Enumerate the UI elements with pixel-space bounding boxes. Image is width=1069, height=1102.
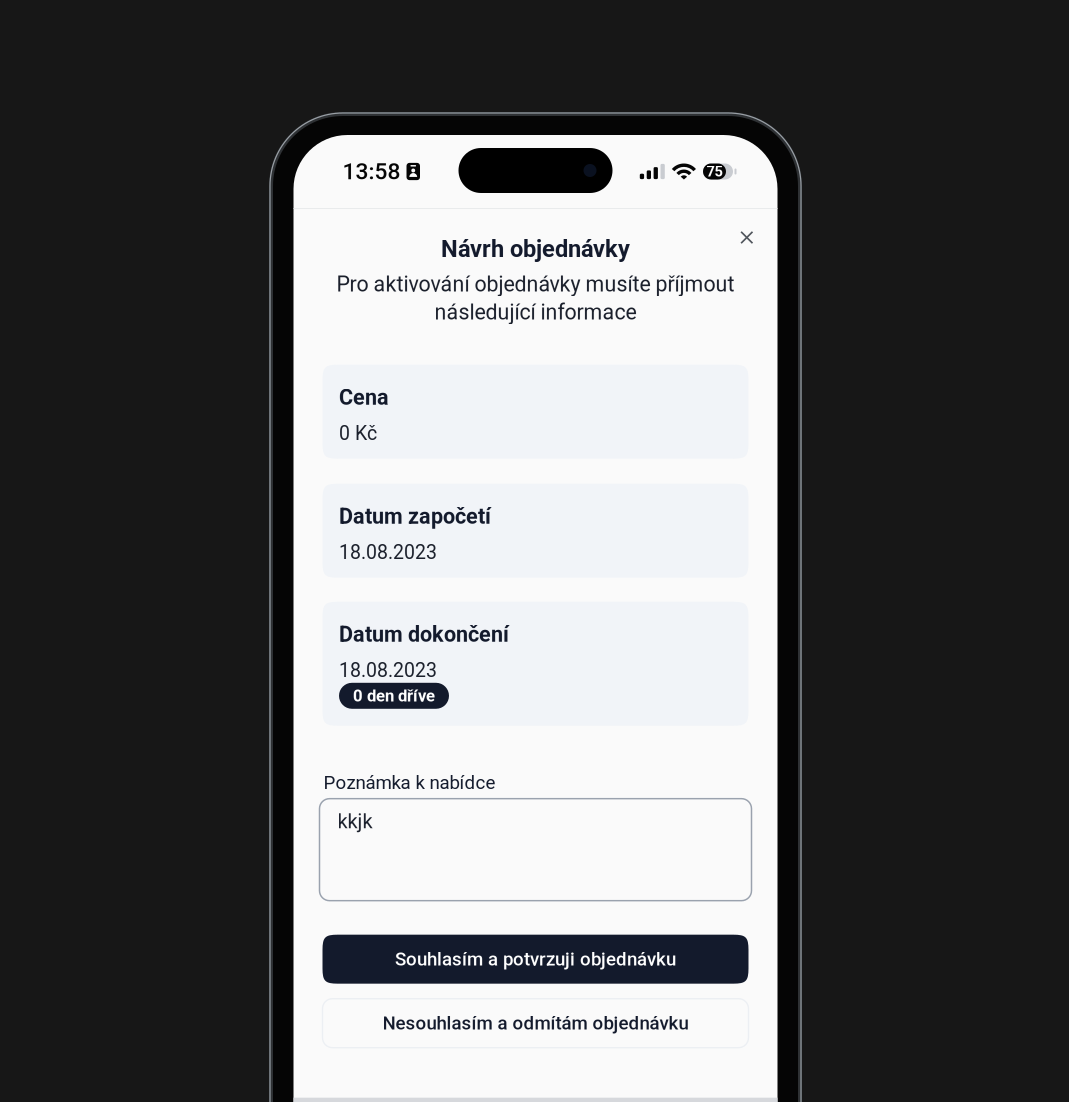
staticText: následující informace: [434, 300, 636, 325]
staticText: kkjk: [337, 810, 372, 833]
staticText: 0 Kč: [339, 422, 377, 445]
staticText: 13:58: [342, 158, 400, 185]
staticText: Cena: [339, 385, 389, 410]
staticText: Pro aktivování objednávky musíte příjmou…: [336, 272, 734, 297]
staticText: Návrh objednávky: [441, 235, 630, 263]
button[interactable]: Nesouhlasím a odmítám objednávku: [322, 999, 748, 1048]
staticText: Datum započetí: [339, 504, 491, 529]
button[interactable]: Close: [727, 217, 767, 257]
staticText: Poznámka k nabídce: [323, 772, 495, 794]
staticText: 18.08.2023: [339, 659, 437, 682]
staticText: Datum dokončení: [339, 622, 509, 647]
button[interactable]: Souhlasím a potvrzuji objednávku: [322, 935, 748, 984]
staticText: 75: [706, 163, 722, 180]
staticText: 0 den dříve: [353, 686, 435, 705]
staticText: Souhlasím a potvrzuji objednávku: [395, 948, 676, 970]
staticText: Nesouhlasím a odmítám objednávku: [382, 1012, 688, 1034]
staticText: 18.08.2023: [339, 541, 437, 564]
